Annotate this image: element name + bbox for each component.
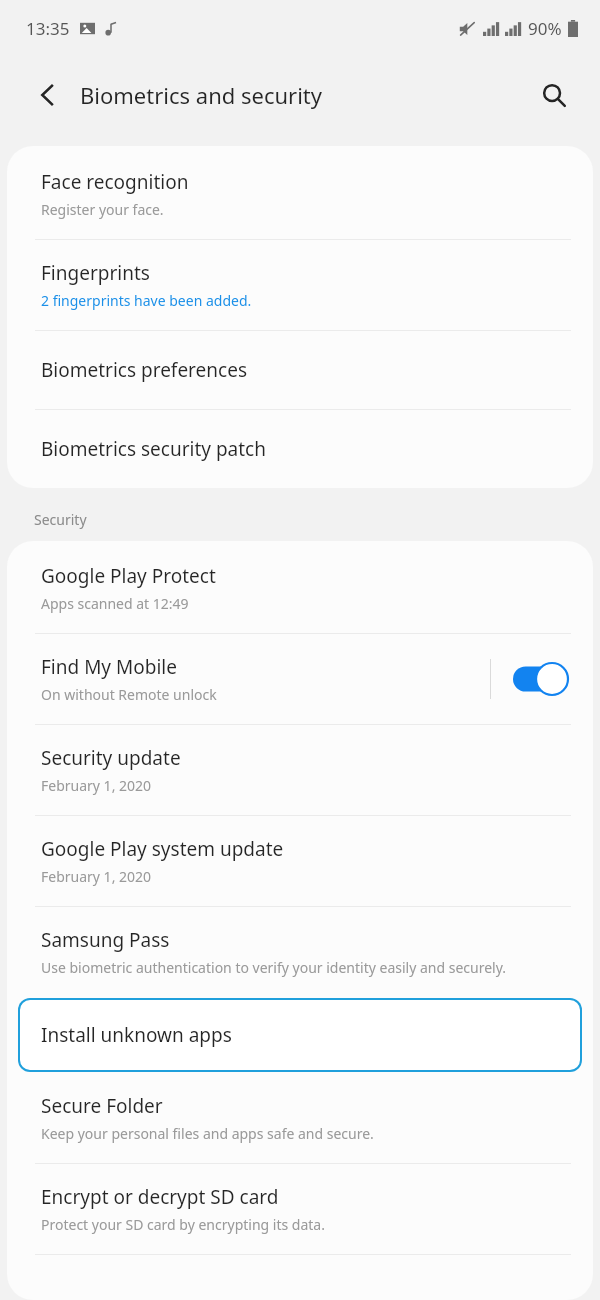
staticText: 13:35 <box>26 17 70 40</box>
button[interactable]: Back <box>22 69 74 121</box>
staticText: Google Play system update <box>41 836 284 862</box>
button[interactable]: Encrypt or decrypt SD card <box>7 1164 593 1254</box>
staticText: Install unknown apps <box>41 1022 232 1048</box>
staticText: Encrypt or decrypt SD card <box>41 1184 279 1210</box>
button[interactable]: Install unknown apps <box>18 998 582 1072</box>
staticText: Find My Mobile <box>41 654 177 680</box>
staticText: Use biometric authentication to verify y… <box>41 958 507 977</box>
button[interactable]: Search <box>528 69 580 121</box>
staticText: Keep your personal files and apps safe a… <box>41 1124 374 1143</box>
staticText: Security <box>34 510 87 529</box>
button[interactable]: Find My Mobile <box>7 634 593 724</box>
button[interactable]: Security update <box>7 725 593 815</box>
staticText: February 1, 2020 <box>41 867 152 886</box>
staticText: Biometrics and security <box>80 80 323 110</box>
staticText: Secure Folder <box>41 1093 163 1119</box>
button[interactable]: Biometrics preferences <box>7 331 593 409</box>
button[interactable]: Samsung Pass <box>7 907 593 993</box>
button[interactable]: Face recognition <box>7 146 593 239</box>
staticText: 90% <box>528 17 562 40</box>
staticText: Biometrics preferences <box>41 357 247 383</box>
staticText: Samsung Pass <box>41 927 170 953</box>
staticText: Apps scanned at 12:49 <box>41 594 189 613</box>
button[interactable]: Google Play system update <box>7 816 593 906</box>
staticText: February 1, 2020 <box>41 776 152 795</box>
staticText: Protect your SD card by encrypting its d… <box>41 1215 325 1234</box>
staticText: Security update <box>41 745 181 771</box>
button[interactable]: Fingerprints <box>7 240 593 330</box>
staticText: Face recognition <box>41 169 189 195</box>
staticText: Register your face. <box>41 200 164 219</box>
staticText: 2 fingerprints have been added. <box>41 291 252 310</box>
staticText: Biometrics security patch <box>41 436 266 462</box>
staticText: On without Remote unlock <box>41 685 217 704</box>
staticText: Google Play Protect <box>41 563 216 589</box>
button[interactable]: Secure Folder <box>7 1077 593 1163</box>
button[interactable]: Find My Mobile toggle <box>513 662 569 696</box>
button[interactable]: Biometrics security patch <box>7 410 593 488</box>
staticText: Fingerprints <box>41 260 150 286</box>
button[interactable]: Google Play Protect <box>7 541 593 633</box>
